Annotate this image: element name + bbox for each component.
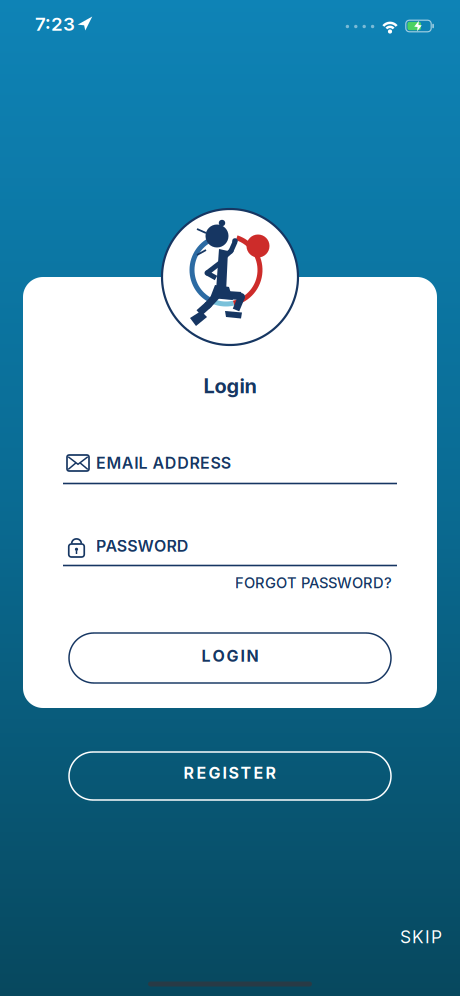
staticText: SKIP <box>400 927 442 947</box>
staticText: PASSWORD <box>96 537 189 555</box>
button[interactable]: FORGOT PASSWORD? <box>62 573 392 593</box>
button[interactable]: SKIP <box>400 927 442 947</box>
staticText: Login <box>203 374 256 398</box>
staticText: LOGIN <box>201 647 258 665</box>
staticText: REGISTER <box>183 764 276 782</box>
staticText: EMAIL ADDRESS <box>96 454 231 472</box>
button[interactable]: REGISTER <box>69 752 391 800</box>
button[interactable]: Email address <box>63 441 397 485</box>
staticText: FORGOT PASSWORD? <box>235 574 392 592</box>
button[interactable]: LOGIN <box>69 633 391 683</box>
staticText: 7:23 <box>35 13 75 35</box>
button[interactable]: Password <box>63 524 397 568</box>
